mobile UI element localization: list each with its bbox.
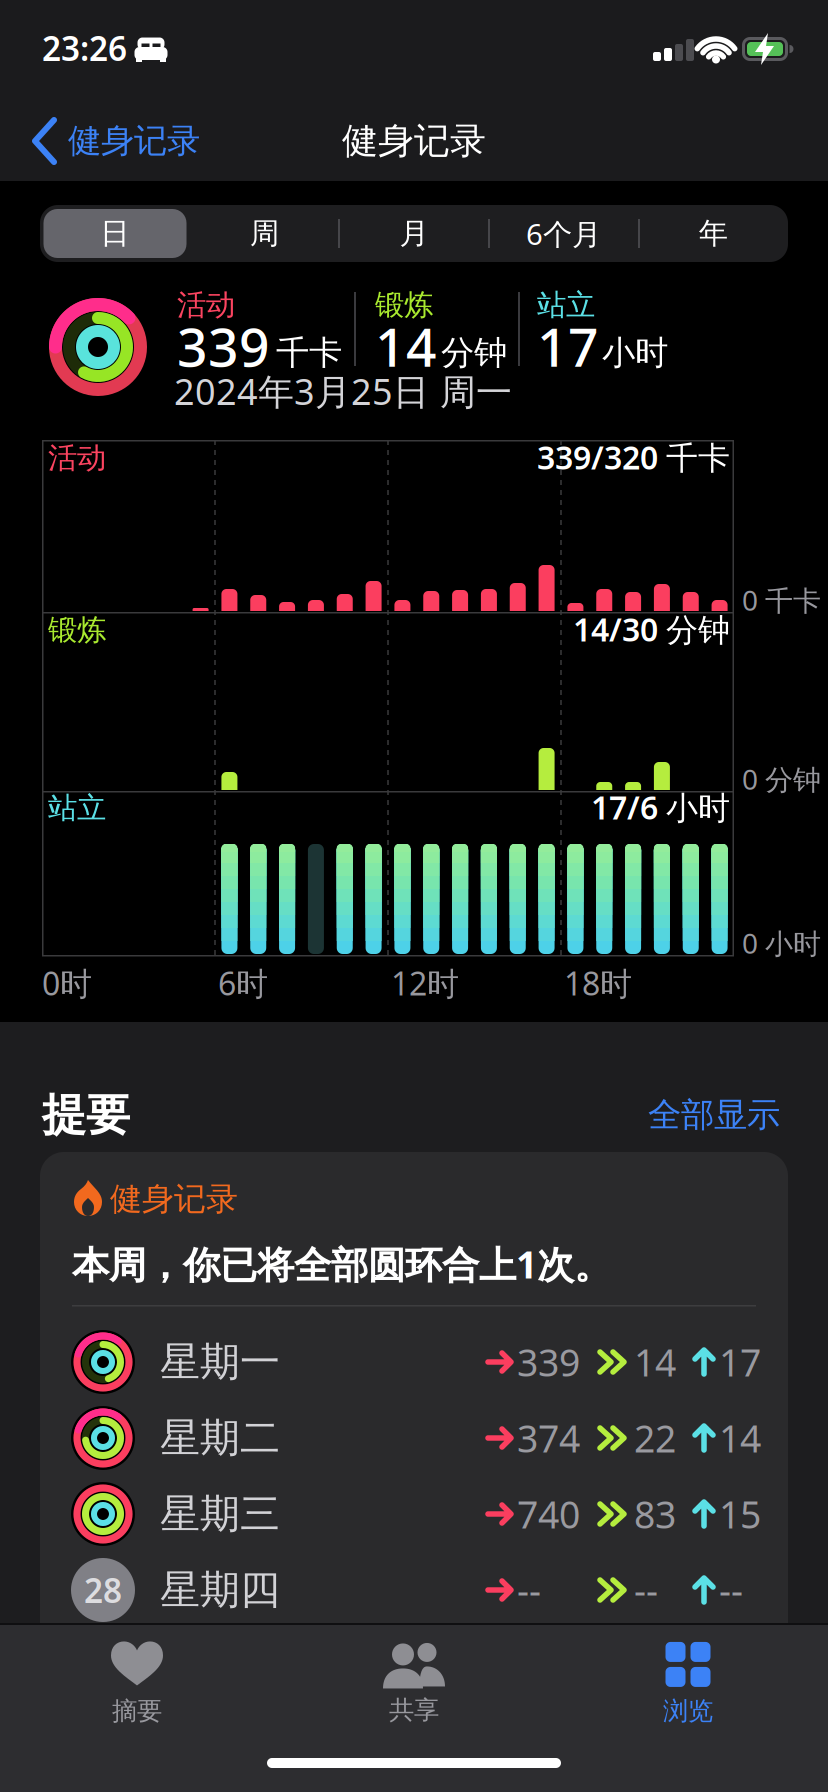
staticText: 0 小时	[742, 924, 821, 962]
staticText: 星期一	[160, 1337, 280, 1386]
staticText: 15	[719, 1489, 761, 1539]
staticText: 740	[517, 1489, 580, 1539]
button[interactable]: 返回	[30, 99, 270, 183]
staticText: 14	[719, 1413, 761, 1463]
staticText: 0 千卡	[742, 581, 821, 619]
staticText: 锻炼	[375, 287, 433, 323]
button[interactable]: 日	[40, 205, 190, 262]
staticText: 活动	[48, 440, 106, 476]
button[interactable]: 共享	[324, 1624, 504, 1744]
staticText: 14	[634, 1337, 676, 1387]
button[interactable]: 全部显示	[648, 1094, 780, 1135]
staticText: 83	[634, 1489, 676, 1539]
staticText: 18时	[564, 962, 632, 1004]
staticText: 6个月	[526, 214, 601, 253]
staticText: 6时	[218, 962, 268, 1004]
staticText: 0 分钟	[742, 760, 821, 798]
staticText: 共享	[389, 1694, 439, 1725]
button[interactable]: 年	[638, 205, 788, 262]
staticText: 活动	[177, 287, 235, 323]
staticText: 周	[250, 215, 279, 251]
staticText: 17/6 小时	[591, 786, 730, 828]
staticText: 374	[517, 1413, 580, 1463]
staticText: --	[719, 1565, 743, 1615]
staticText: 全部显示	[648, 1094, 780, 1135]
staticText: 健身记录	[342, 119, 486, 163]
staticText: 锻炼	[48, 612, 106, 648]
button[interactable]: 摘要	[47, 1624, 227, 1744]
button[interactable]: 月	[339, 205, 489, 262]
button[interactable]: 周	[190, 205, 339, 262]
staticText: 22	[634, 1413, 676, 1463]
staticText: 14	[375, 311, 437, 381]
staticText: 健身记录	[68, 120, 200, 161]
staticText: 分钟	[441, 332, 507, 373]
staticText: 28	[84, 1568, 122, 1612]
staticText: 健身记录	[110, 1179, 238, 1219]
staticText: 星期四	[160, 1565, 280, 1614]
staticText: 339	[177, 311, 270, 381]
staticText: --	[517, 1565, 541, 1615]
staticText: 日	[100, 215, 129, 251]
staticText: 2024年3月25日 周一	[174, 367, 512, 415]
staticText: 17	[537, 311, 599, 381]
staticText: 星期三	[160, 1489, 280, 1538]
staticText: 339	[517, 1337, 580, 1387]
staticText: 17	[719, 1337, 761, 1387]
staticText: 千卡	[276, 332, 342, 373]
staticText: 星期二	[160, 1413, 280, 1462]
staticText: 本周，你已将全部圆环合上1次。	[72, 1239, 611, 1289]
staticText: 浏览	[663, 1695, 713, 1726]
staticText: 12时	[391, 962, 459, 1004]
button[interactable]: 6个月	[489, 205, 638, 262]
staticText: 月	[399, 215, 428, 251]
staticText: 站立	[48, 790, 106, 826]
staticText: 339/320 千卡	[537, 436, 730, 478]
staticText: --	[634, 1565, 658, 1615]
staticText: 摘要	[112, 1695, 162, 1726]
staticText: 14/30 分钟	[573, 608, 730, 650]
staticText: 0时	[42, 962, 92, 1004]
staticText: 站立	[537, 287, 595, 323]
staticText: 提要	[42, 1088, 130, 1142]
staticText: 小时	[602, 332, 668, 373]
button[interactable]: 浏览	[598, 1624, 778, 1744]
staticText: 23:26	[42, 26, 127, 70]
staticText: 年	[699, 215, 728, 251]
